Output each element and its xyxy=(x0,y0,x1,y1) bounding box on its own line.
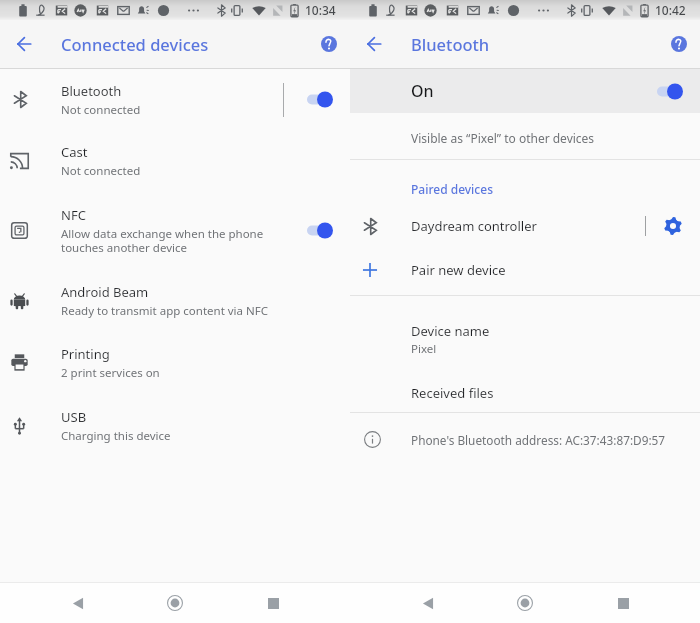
staticText: Allow data exchange when the phone touch… xyxy=(61,226,264,255)
staticText: Paired devices xyxy=(411,181,493,197)
button[interactable]: Printing xyxy=(0,331,350,394)
button[interactable]: Home xyxy=(166,583,183,623)
button[interactable]: Toggle Bluetooth xyxy=(284,68,350,131)
staticText: Daydream controller xyxy=(411,217,537,235)
staticText: Bluetooth xyxy=(61,82,122,100)
staticText: Pair new device xyxy=(411,261,506,279)
staticText: Bluetooth xyxy=(411,33,490,55)
staticText: On xyxy=(411,80,434,102)
button[interactable]: Help xyxy=(307,20,350,68)
staticText: Received files xyxy=(411,384,494,402)
button[interactable]: Daydream controller xyxy=(350,209,700,243)
staticText: Not connected xyxy=(61,163,141,179)
staticText: Cast xyxy=(61,143,88,161)
staticText: NFC xyxy=(61,206,86,224)
button[interactable]: Back xyxy=(68,583,87,623)
button[interactable]: Recents xyxy=(266,583,280,623)
staticText: Phone's Bluetooth address: AC:37:43:87:D… xyxy=(411,432,666,448)
button[interactable]: Toggle NFC xyxy=(284,192,350,268)
staticText: Connected devices xyxy=(61,33,209,55)
button[interactable]: Android Beam xyxy=(0,269,350,332)
staticText: Charging this device xyxy=(61,428,171,444)
button[interactable]: Back xyxy=(418,583,437,623)
button[interactable]: NFC xyxy=(0,192,350,268)
staticText: Android Beam xyxy=(61,283,149,301)
staticText: Device name xyxy=(411,322,490,340)
staticText: Printing xyxy=(61,345,110,363)
button[interactable]: Device name xyxy=(350,322,700,357)
staticText: Not connected xyxy=(61,102,141,118)
button[interactable]: USB xyxy=(0,394,350,457)
button[interactable]: Received files xyxy=(350,384,700,402)
staticText: 2 print services on xyxy=(61,365,160,381)
button[interactable]: Back xyxy=(0,20,61,68)
button[interactable]: Cast xyxy=(0,129,350,192)
staticText: USB xyxy=(61,408,87,426)
button[interactable]: Recents xyxy=(616,583,630,623)
button[interactable]: Help xyxy=(657,20,700,68)
button[interactable]: Home xyxy=(516,583,533,623)
staticText: Pixel xyxy=(411,341,437,357)
button[interactable]: Pair new device xyxy=(350,253,700,287)
button[interactable]: Device settings xyxy=(646,209,700,243)
staticText: 10:34 xyxy=(305,2,336,18)
staticText: Ready to transmit app content via NFC xyxy=(61,303,268,319)
button[interactable]: On xyxy=(350,69,700,113)
staticText: 10:42 xyxy=(655,2,686,18)
button[interactable]: Back xyxy=(350,20,411,68)
staticText: Visible as “Pixel” to other devices xyxy=(411,130,595,146)
button[interactable]: Bluetooth xyxy=(0,68,350,131)
